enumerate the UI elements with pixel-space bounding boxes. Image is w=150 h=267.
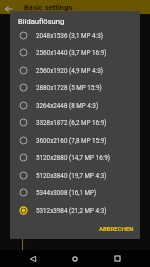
button[interactable]: 5120x3840 (19,7 MP 4:3) xyxy=(10,166,140,184)
button[interactable]: 3264x2448 (8 MP 4:3) xyxy=(10,96,140,114)
staticText: 2560x1920 (4,9 MP 4:3) xyxy=(36,67,103,74)
staticText: 2880x1728 (5 MP 15:9) xyxy=(36,84,102,91)
staticText: 3264x2448 (8 MP 4:3) xyxy=(36,102,99,109)
staticText: 2048x1536 (3,1 MP 4:3) xyxy=(36,32,103,39)
button[interactable]: Navigate up xyxy=(2,2,16,16)
staticText: 5120x3840 (19,7 MP 4:3) xyxy=(36,172,107,179)
button[interactable]: 5312x3984 (21,2 MP 4:3) xyxy=(10,201,140,219)
button[interactable]: 2560x1440 (3,7 MP 16:9) xyxy=(10,43,140,61)
button[interactable]: 5120x2880 (14,7 MP 16:9) xyxy=(10,148,140,166)
button[interactable]: Recent apps xyxy=(109,250,125,267)
staticText: 3328x1872 (6,2 MP 16:9) xyxy=(36,119,107,126)
staticText: 5120x2880 (14,7 MP 16:9) xyxy=(36,154,110,161)
button[interactable]: ABBRECHEN xyxy=(98,220,134,236)
button[interactable]: Home xyxy=(67,250,83,267)
staticText: 2560x1440 (3,7 MP 16:9) xyxy=(36,49,107,56)
staticText: Basic settings xyxy=(24,3,73,12)
button[interactable]: 2560x1920 (4,9 MP 4:3) xyxy=(10,61,140,79)
staticText: 5312x3984 (21,2 MP 4:3) xyxy=(36,207,107,214)
button[interactable]: 3328x1872 (6,2 MP 16:9) xyxy=(10,113,140,131)
staticText: ABBRECHEN xyxy=(99,225,134,232)
staticText: Bildauflösung xyxy=(18,17,65,26)
button[interactable]: Back xyxy=(25,250,41,267)
button[interactable]: 2048x1536 (3,1 MP 4:3) xyxy=(10,26,140,44)
staticText: 3600x2160 (7,8 MP 15:9) xyxy=(36,137,107,144)
button[interactable]: 2880x1728 (5 MP 15:9) xyxy=(10,78,140,96)
staticText: 5344x3008 (16,1 MP) xyxy=(36,189,97,196)
button[interactable]: 5344x3008 (16,1 MP) xyxy=(10,183,140,201)
button[interactable]: 3600x2160 (7,8 MP 15:9) xyxy=(10,131,140,149)
